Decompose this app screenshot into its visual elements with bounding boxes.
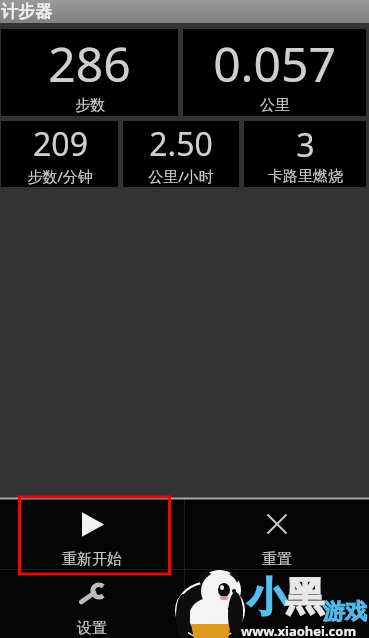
other: Settings [78, 586, 107, 606]
staticText: 2.50 [149, 122, 213, 166]
staticText: 重置 [262, 550, 292, 569]
staticText: 卡路里燃烧 [268, 167, 343, 186]
button[interactable]: 0.057 [183, 29, 366, 116]
staticText: 小 [247, 572, 287, 622]
other: Reset [268, 515, 286, 533]
staticText: 重新开始 [62, 550, 122, 569]
button[interactable]: Reset [185, 500, 369, 569]
button[interactable]: 2.50 [123, 121, 239, 187]
staticText: 286 [48, 31, 131, 96]
staticText: 步数/分钟 [27, 166, 93, 186]
staticText: 游戏 [323, 598, 367, 626]
staticText: 0.057 [213, 31, 336, 96]
staticText: 步数 [75, 96, 105, 115]
button[interactable]: Restart [0, 500, 184, 569]
button[interactable]: 286 [1, 29, 178, 116]
button[interactable]: Settings [0, 570, 184, 638]
staticText: 黑 [285, 572, 324, 621]
staticText: 公里/小时 [148, 166, 214, 186]
staticText: 公里 [260, 96, 290, 115]
staticText: 设置 [77, 619, 107, 638]
staticText: www.xiaohei.com [241, 622, 357, 638]
button[interactable]: 209 [1, 121, 118, 187]
button[interactable]: 3 [244, 121, 366, 187]
staticText: 209 [33, 122, 88, 166]
staticText: 计步器 [1, 1, 52, 22]
staticText: 3 [296, 123, 315, 167]
other: Restart [82, 514, 102, 535]
